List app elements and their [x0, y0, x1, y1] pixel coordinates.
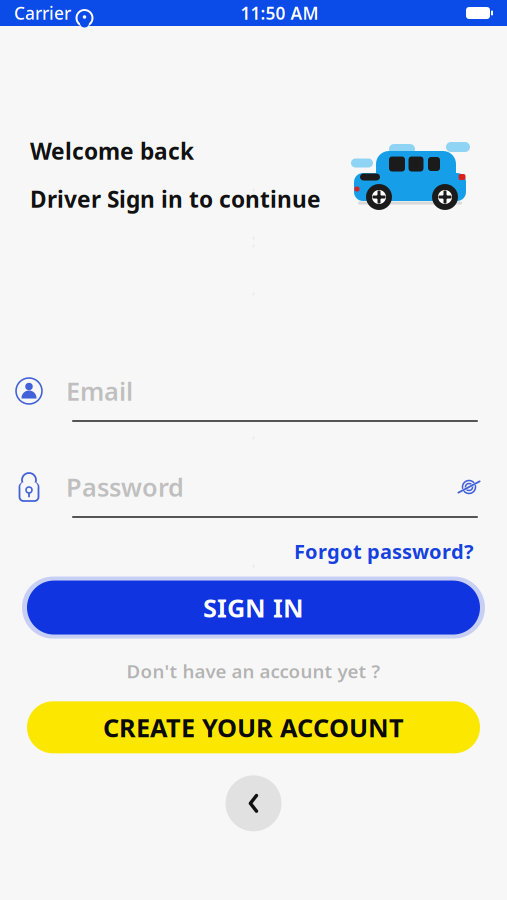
- staticText: Password: [66, 470, 184, 504]
- staticText: Forgot password?: [294, 538, 474, 565]
- button[interactable]: CREATE YOUR ACCOUNT: [0, 701, 507, 753]
- button[interactable]: Forgot password?: [290, 532, 478, 571]
- button[interactable]: Back: [225, 775, 281, 831]
- button[interactable]: SIGN IN: [0, 577, 507, 639]
- staticText: SIGN IN: [203, 591, 304, 624]
- staticText: Carrier: [14, 1, 71, 24]
- staticText: Welcome back: [30, 136, 194, 166]
- staticText: Don't have an account yet ?: [126, 659, 380, 683]
- staticText: CREATE YOUR ACCOUNT: [103, 710, 404, 744]
- staticText: Email: [66, 374, 133, 408]
- staticText: 11:50 AM: [240, 1, 318, 24]
- staticText: Driver Sign in to continue: [30, 184, 321, 214]
- button[interactable]: Show password: [449, 470, 489, 504]
